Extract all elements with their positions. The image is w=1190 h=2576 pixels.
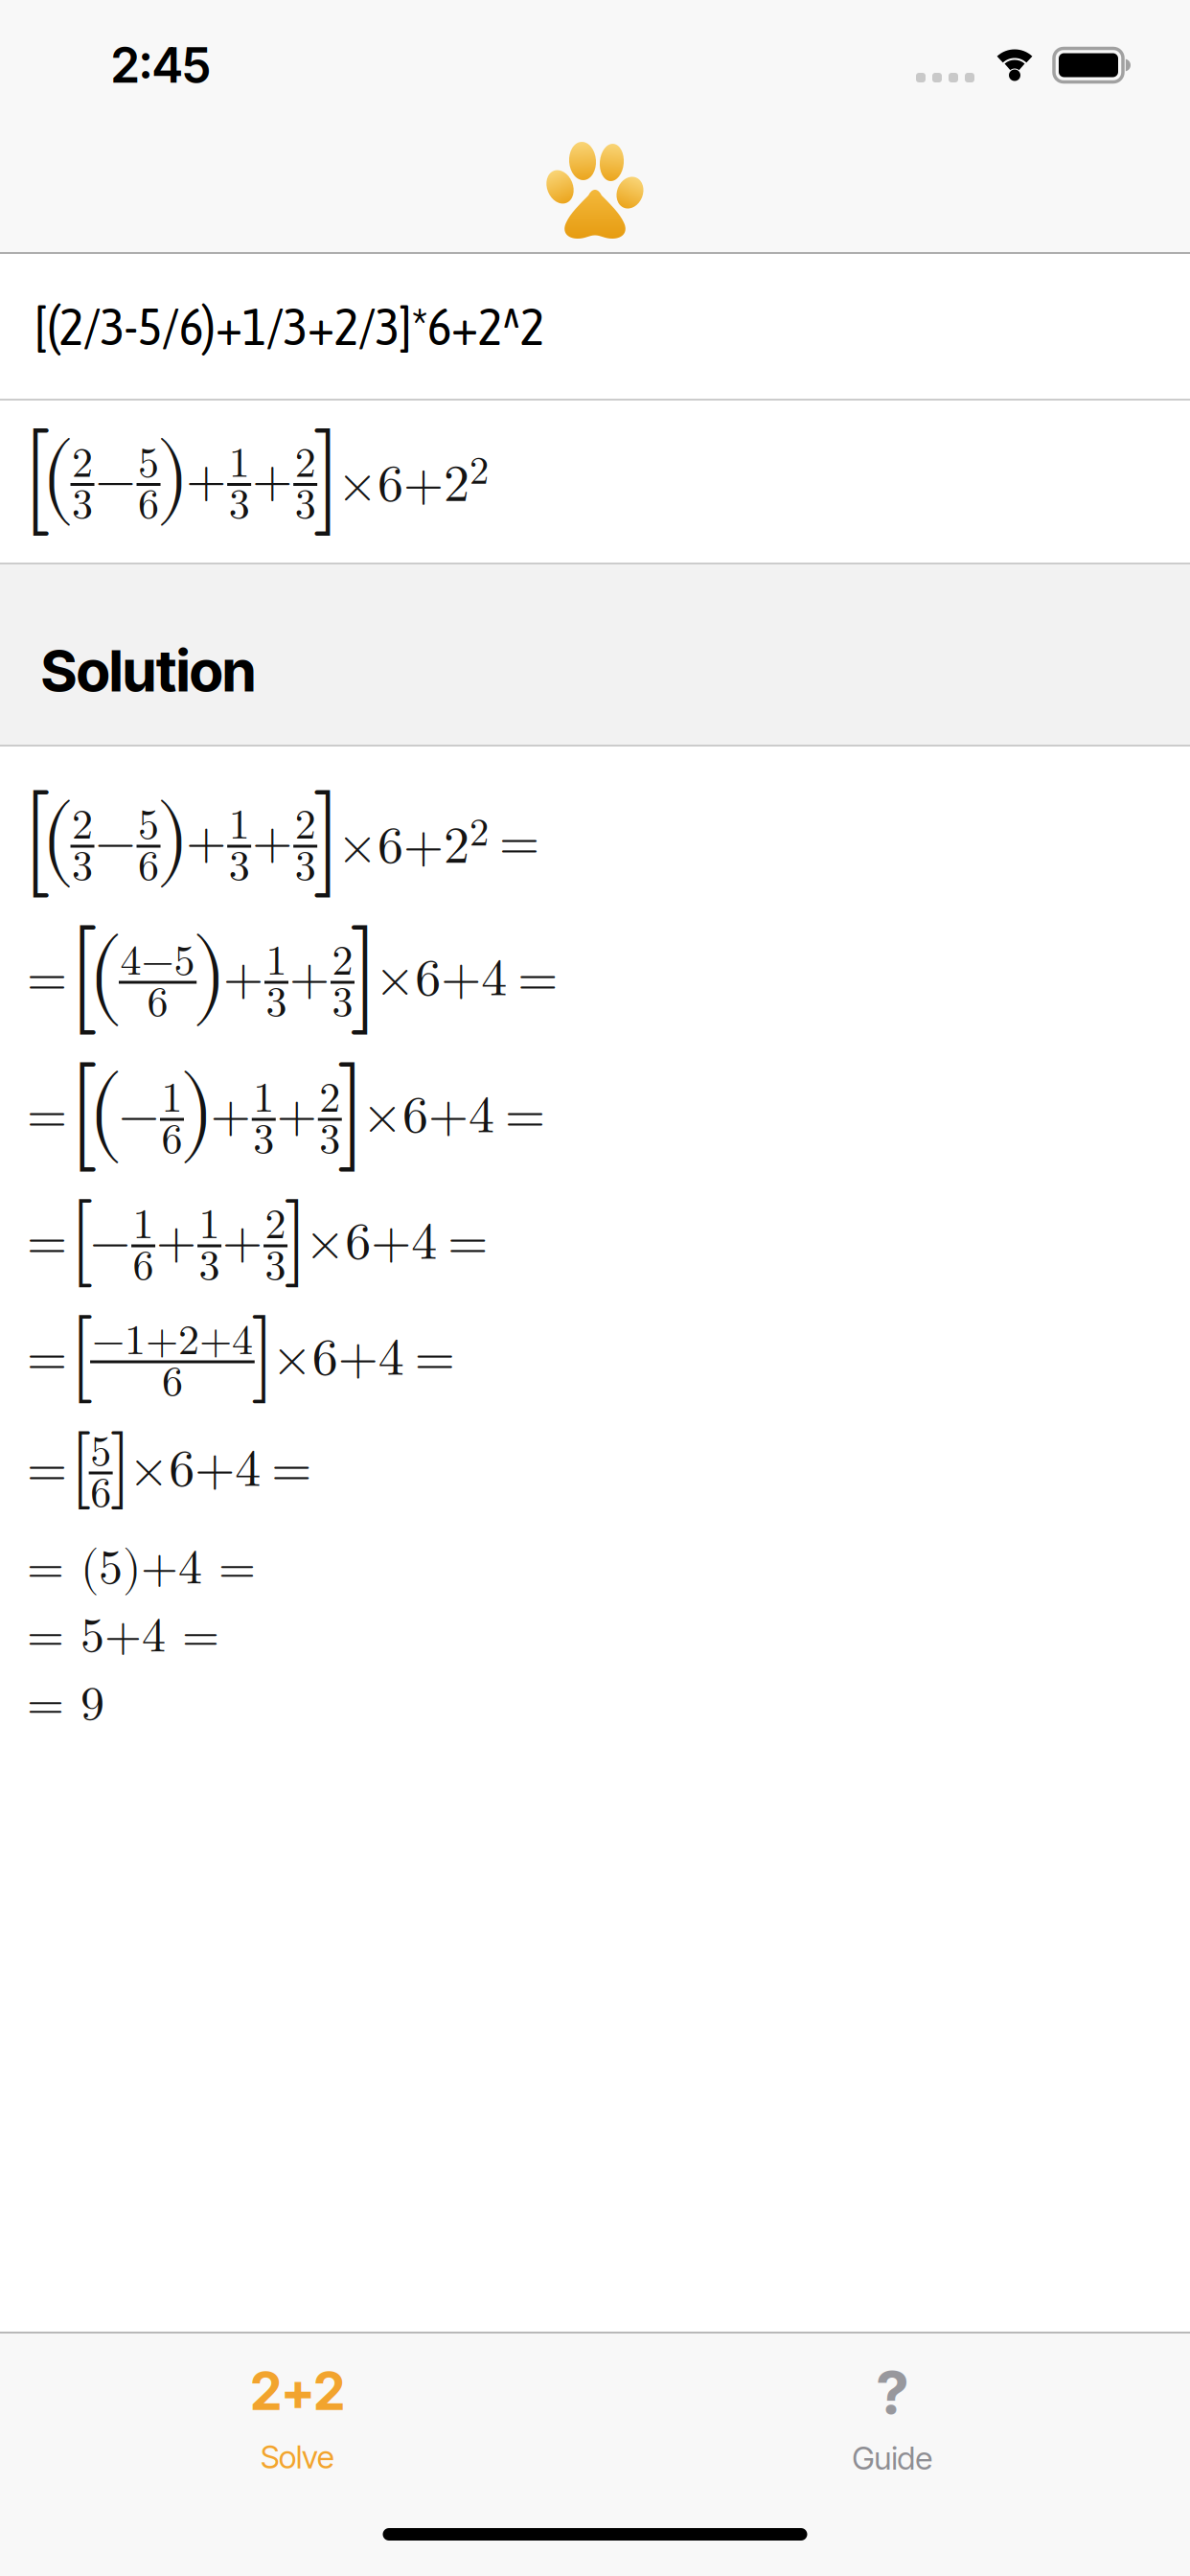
staticText: 2 — [319, 1078, 340, 1120]
staticText: [ — [68, 1056, 98, 1165]
staticText: − — [95, 817, 136, 869]
staticText: ] — [284, 1194, 309, 1282]
staticText: + — [156, 1217, 197, 1269]
staticText: 3 — [332, 982, 353, 1024]
staticText: 6 — [147, 982, 168, 1024]
staticText: ×6+4 — [129, 1444, 261, 1496]
staticText: 1 — [133, 1204, 154, 1246]
staticText: = — [27, 954, 67, 1005]
staticText: ] — [312, 784, 342, 891]
staticText: 4−5 — [120, 941, 195, 983]
staticText: 5 — [138, 443, 159, 485]
staticText: ] — [337, 1056, 367, 1165]
staticText: − — [119, 1091, 159, 1142]
staticText: Solution — [41, 636, 256, 705]
staticText: 3 — [319, 1119, 340, 1161]
staticText: 2 — [295, 443, 316, 485]
staticText: 6 — [162, 1361, 183, 1404]
staticText: ] — [312, 422, 342, 530]
staticText: ×6+4 — [362, 1091, 494, 1142]
staticText: + — [222, 1217, 263, 1269]
staticText: = — [27, 1091, 67, 1142]
staticText: ( — [87, 928, 124, 1021]
staticText: ×6+4 — [272, 1333, 404, 1385]
staticText: + — [186, 817, 226, 869]
staticText: = — [499, 817, 539, 869]
staticText: ( — [40, 433, 75, 521]
staticText: 2+2 — [251, 2360, 344, 2422]
staticText: 2 — [295, 804, 316, 847]
staticText: + — [211, 1091, 251, 1142]
staticText: = — [448, 1217, 488, 1269]
staticText: ] — [251, 1310, 276, 1398]
staticText: 6 — [161, 1119, 183, 1161]
staticText: [ — [69, 1310, 94, 1398]
button[interactable]: ? — [595, 2334, 1190, 2477]
staticText: ×6+22 — [337, 453, 489, 510]
staticText: 2 — [332, 941, 353, 983]
staticText: 3 — [295, 846, 316, 888]
staticText: [ — [21, 784, 51, 891]
staticText: 3 — [229, 484, 250, 526]
staticText: 1 — [229, 443, 250, 485]
staticText: + — [223, 954, 263, 1005]
staticText: −1+2+4 — [92, 1320, 253, 1362]
staticText: + — [277, 1091, 317, 1142]
staticText: [(2/3-5/6)+1/3+2/3]*6+2^2 — [34, 297, 544, 356]
staticText: 3 — [199, 1245, 220, 1288]
staticText: − — [95, 456, 136, 507]
staticText: = — [27, 1217, 67, 1269]
staticText: ? — [877, 2357, 908, 2428]
staticText: 1 — [229, 804, 250, 847]
staticText: = 5+4 = — [27, 1613, 219, 1661]
staticText: 1 — [199, 1204, 220, 1246]
staticText: Guide — [852, 2439, 933, 2477]
staticText: 2 — [72, 804, 93, 847]
staticText: [ — [70, 1427, 92, 1505]
staticText: 1 — [253, 1078, 274, 1120]
staticText: [ — [21, 422, 51, 530]
staticText: 2 — [265, 1204, 286, 1246]
staticText: 6 — [133, 1245, 154, 1288]
staticText: 2:45 — [111, 36, 211, 94]
staticText: 3 — [266, 982, 287, 1024]
staticText: 5 — [90, 1431, 111, 1473]
staticText: ×6+4 — [305, 1217, 437, 1269]
staticText: = — [27, 1333, 67, 1385]
staticText: 6 — [138, 484, 159, 526]
staticText: 3 — [295, 484, 316, 526]
staticText: = 9 — [27, 1681, 104, 1729]
staticText: 3 — [229, 846, 250, 888]
staticText: ( — [40, 795, 75, 883]
staticText: 3 — [265, 1245, 286, 1288]
staticText: + — [252, 817, 292, 869]
staticText: + — [252, 456, 292, 507]
staticText: ) — [179, 1065, 215, 1158]
staticText: ) — [156, 795, 190, 883]
staticText: ×6+4 — [375, 954, 507, 1005]
staticText: = — [518, 954, 558, 1005]
staticText: = — [27, 1444, 67, 1496]
staticText: + — [186, 456, 226, 507]
staticText: = — [505, 1091, 545, 1142]
staticText: = (5)+4 = — [27, 1545, 256, 1593]
staticText: = — [415, 1333, 455, 1385]
staticText: ) — [156, 433, 190, 521]
button[interactable]: 2+2 — [0, 2335, 595, 2476]
staticText: 1 — [161, 1078, 183, 1120]
staticText: − — [90, 1217, 130, 1269]
staticText: 3 — [72, 484, 93, 526]
staticText: ×6+22 — [337, 815, 489, 872]
staticText: [ — [68, 919, 98, 1028]
staticText: 6 — [138, 846, 159, 888]
staticText: ) — [192, 928, 228, 1021]
staticText: ] — [110, 1427, 132, 1505]
staticText: ] — [349, 919, 380, 1028]
staticText: ( — [87, 1065, 124, 1158]
staticText: 3 — [253, 1119, 274, 1161]
staticText: 1 — [266, 941, 287, 983]
staticText: + — [289, 954, 330, 1005]
staticText: = — [271, 1444, 312, 1496]
staticText: 2 — [72, 443, 93, 485]
staticText: [ — [69, 1194, 94, 1282]
